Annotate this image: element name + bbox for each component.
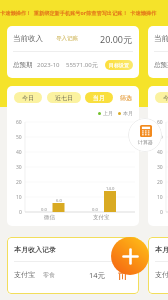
button[interactable]: 今日 [155, 92, 168, 103]
staticText: 今日 [163, 94, 168, 102]
staticText: 零食 [43, 271, 55, 279]
staticText: 0.0 [41, 207, 47, 213]
staticText: 14元 [89, 270, 106, 280]
staticText: 总预期 [154, 61, 168, 69]
staticText: 本月 [123, 110, 133, 116]
staticText: 50 [16, 134, 22, 141]
staticText: 10 [157, 194, 163, 201]
staticText: 目标设置 [109, 62, 129, 68]
staticText: 40 [16, 149, 22, 156]
staticText: 0.0 [92, 207, 98, 213]
button[interactable]: 筛选 [118, 92, 134, 103]
staticText: 10 [16, 194, 22, 201]
staticText: 支付宝 [14, 270, 35, 279]
button[interactable]: 导入记账 [54, 34, 80, 43]
button[interactable]: 支付宝 [155, 262, 168, 287]
staticText: 本月收入记录 [155, 245, 168, 254]
button[interactable]: 近七日 [47, 92, 81, 103]
button[interactable]: 计算器 [128, 118, 162, 152]
button[interactable]: 今日 [14, 92, 42, 103]
button[interactable]: 当月 [85, 92, 113, 103]
staticText: 60 [157, 119, 163, 126]
button[interactable]: 支付宝 [14, 262, 132, 287]
staticText: 6.0 [56, 198, 62, 204]
staticText: 计算器 [138, 139, 153, 145]
staticText: 55571.00元 [66, 61, 98, 69]
staticText: 上月 [103, 110, 113, 116]
staticText: 30 [157, 164, 163, 171]
staticText: 近七日 [55, 94, 73, 102]
staticText: 导入记账 [56, 35, 78, 42]
staticText: 今日 [22, 94, 34, 102]
button[interactable]: 删除 [117, 270, 127, 280]
staticText: 筛选 [120, 94, 132, 101]
staticText: 20 [157, 179, 163, 186]
staticText: 50 [157, 134, 163, 141]
staticText: 20.00元 [100, 33, 133, 45]
staticText: 60 [16, 119, 22, 126]
button[interactable]: 目标设置 [105, 60, 133, 70]
button[interactable]: 添加记账 [111, 237, 149, 275]
staticText: 当前收入 [13, 34, 43, 43]
staticText: 本月收入记录 [14, 245, 56, 254]
staticText: 当月 [93, 94, 105, 102]
staticText: 微信 [44, 214, 55, 221]
staticText: 20 [16, 179, 22, 186]
staticText: 支付宝 [155, 270, 168, 279]
staticText: 14.0 [106, 186, 115, 192]
staticText: 30 [16, 164, 22, 171]
staticText: 支付宝 [93, 214, 110, 221]
staticText: 40 [157, 149, 163, 156]
staticText: 卡速懒操作！ 重新绑定新手机账号or筛查管写出记账！ 卡速懒操作 [0, 9, 157, 16]
staticText: 当前收入 [154, 34, 168, 43]
staticText: 0 [160, 209, 163, 216]
button[interactable]: 报表 [121, 246, 132, 253]
staticText: 0 [19, 209, 22, 216]
staticText: 2023-10 [37, 61, 60, 69]
staticText: 总预期 [13, 61, 33, 69]
